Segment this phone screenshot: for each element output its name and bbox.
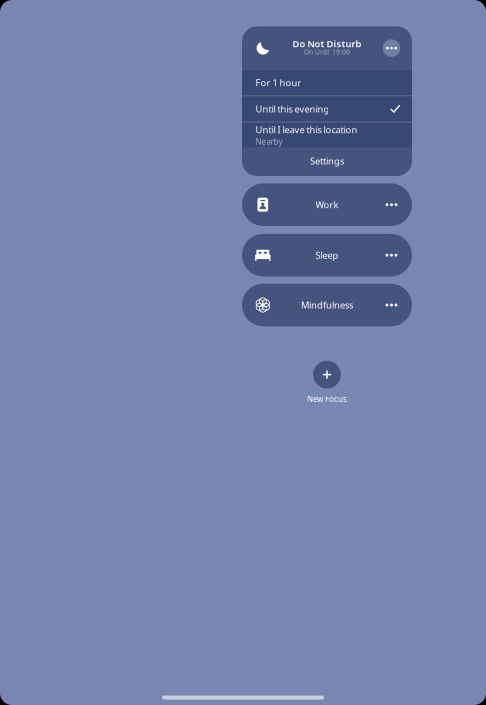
button[interactable]: For 1 hour	[242, 70, 412, 95]
staticText: New Focus	[307, 394, 347, 404]
button[interactable]: Until this evening	[242, 96, 412, 122]
staticText: Until this evening	[255, 103, 329, 115]
button[interactable]: Sleep	[242, 234, 412, 276]
staticText: Until I leave this location	[255, 123, 357, 136]
button[interactable]: Work	[242, 183, 412, 226]
button[interactable]: Do Not Disturb	[242, 26, 412, 70]
staticText: For 1 hour	[255, 76, 301, 89]
staticText: Nearby	[255, 136, 282, 147]
staticText: Settings	[310, 155, 344, 167]
staticText: Mindfulness	[301, 299, 353, 311]
staticText: Do Not Disturb	[292, 37, 361, 50]
staticText: Sleep	[315, 249, 338, 261]
button[interactable]: Mindfulness	[242, 284, 412, 326]
button[interactable]: Until I leave this location	[242, 122, 412, 148]
staticText: On Until 19:00	[304, 47, 350, 56]
staticText: Work	[315, 198, 338, 211]
button[interactable]: Settings	[242, 148, 412, 176]
button[interactable]: New Focus	[297, 361, 357, 407]
